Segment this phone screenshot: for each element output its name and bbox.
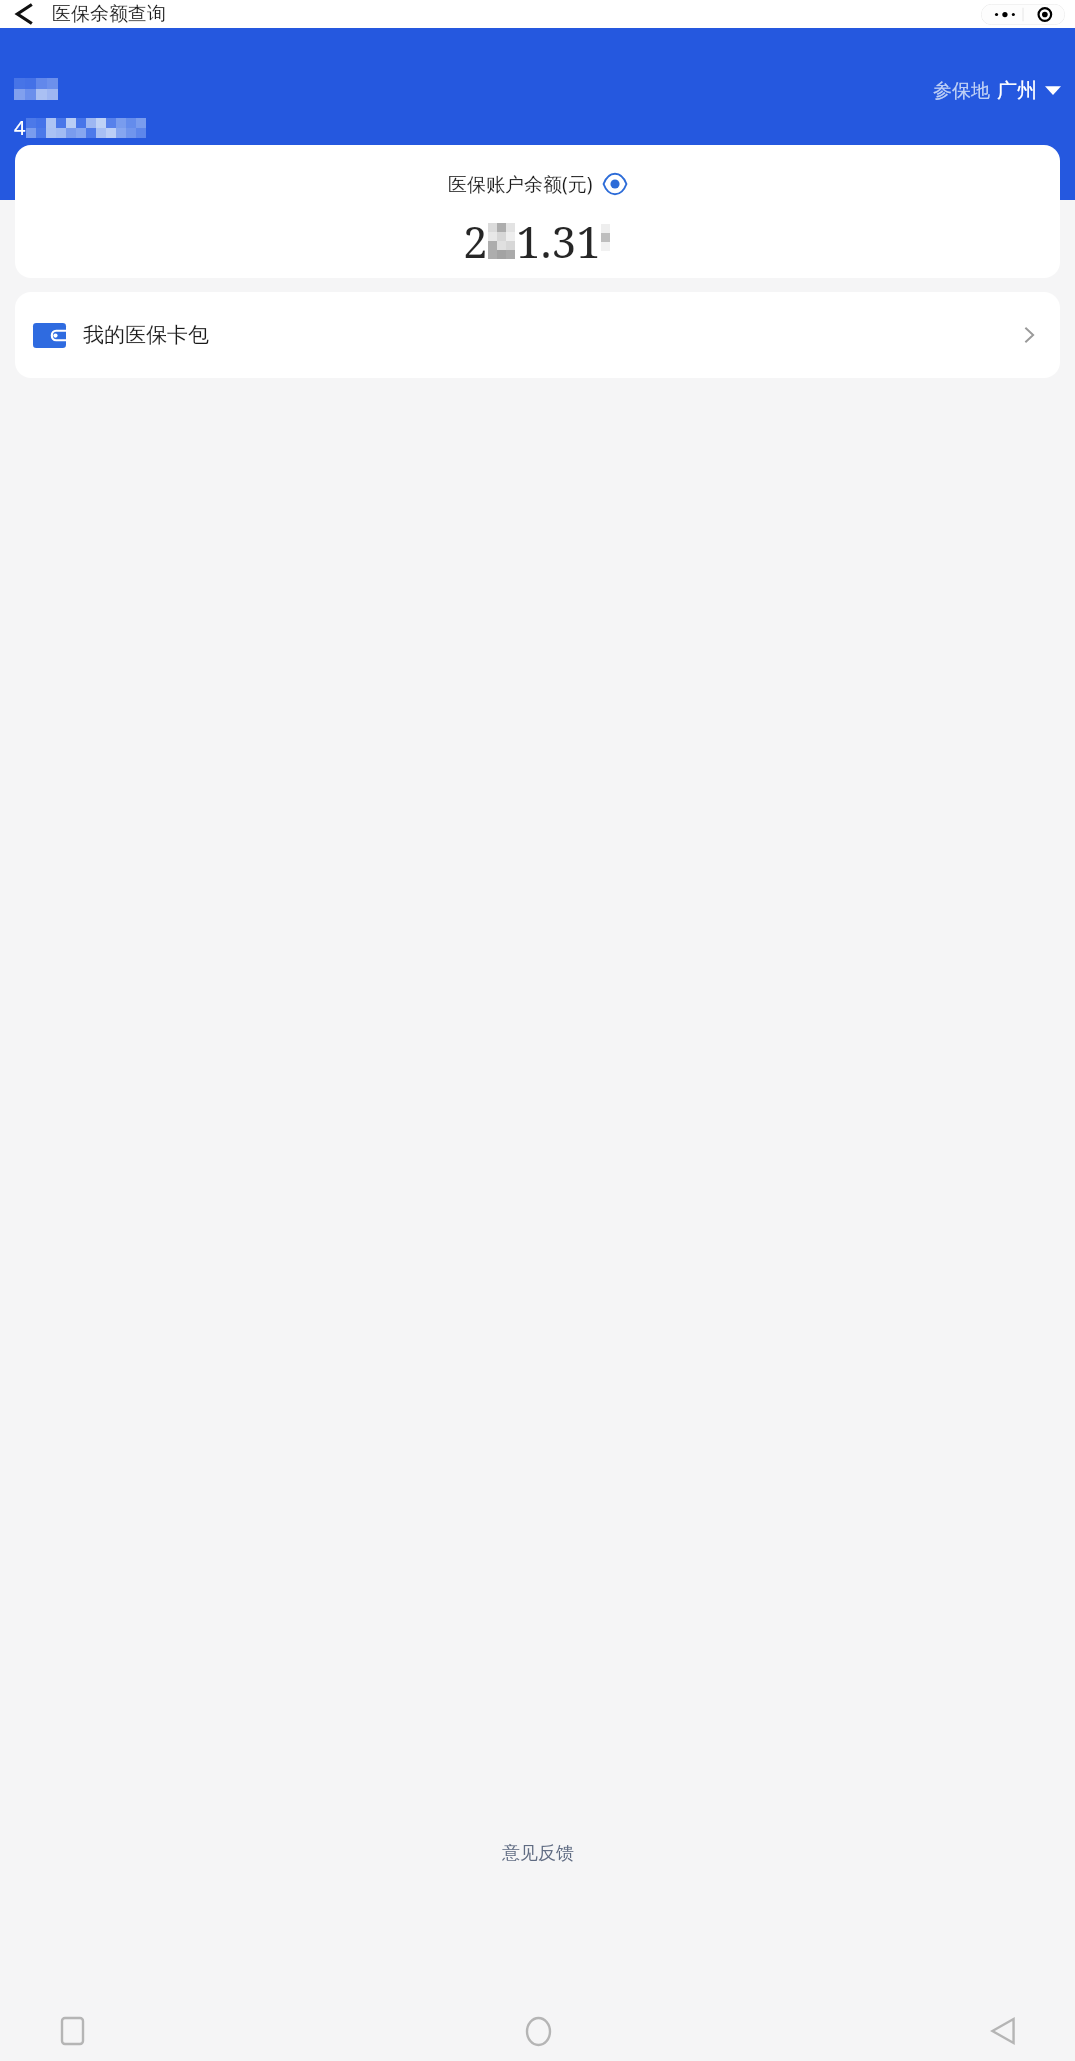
button[interactable]: 医保账户余额(元) (15, 145, 1060, 278)
button[interactable]: 返回 (4, 0, 46, 28)
staticText: 2 (463, 211, 488, 271)
button[interactable]: 最近任务 (44, 2003, 100, 2059)
button[interactable]: 意见反馈 (484, 1834, 592, 1873)
button[interactable]: 我的医保卡包 (15, 292, 1060, 378)
staticText: 1.31 (516, 211, 601, 271)
staticText: 医保账户余额(元) (448, 171, 593, 197)
staticText: 4 (14, 114, 26, 141)
button[interactable]: 返回 (975, 2003, 1031, 2059)
button[interactable]: 主页 (510, 2003, 566, 2059)
button[interactable]: 显示或隐藏余额 (602, 171, 628, 197)
staticText: 我的医保卡包 (83, 322, 209, 348)
button[interactable]: 参保地 (933, 78, 1061, 103)
staticText: 参保地 (933, 79, 990, 103)
staticText: 医保余额查询 (52, 2, 166, 26)
button[interactable]: 菜单 (981, 4, 1065, 25)
staticText: 广州 (997, 78, 1037, 103)
staticText: 意见反馈 (502, 1842, 574, 1865)
